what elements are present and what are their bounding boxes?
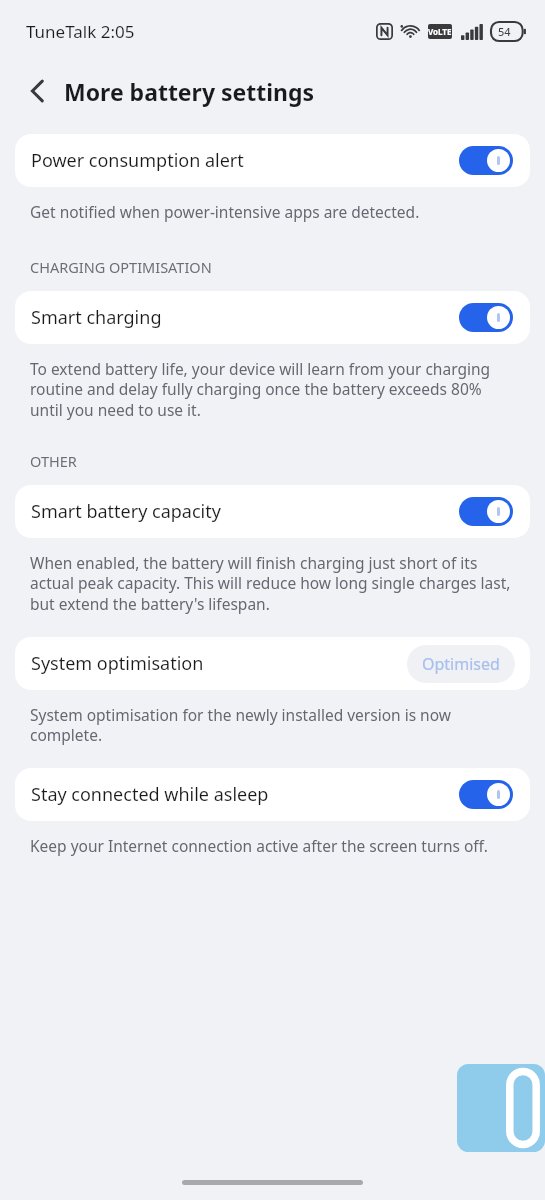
- staticText: Keep your Internet connection active aft…: [30, 835, 515, 856]
- staticText: System optimisation for the newly instal…: [30, 704, 515, 746]
- staticText: To extend battery life, your device will…: [30, 358, 515, 421]
- staticText: More battery settings: [64, 76, 315, 107]
- button[interactable]: Smart battery capacity: [15, 485, 530, 538]
- button[interactable]: Stay connected while asleep: [15, 768, 530, 821]
- staticText: 54: [498, 24, 511, 39]
- staticText: CHARGING OPTIMISATION: [30, 257, 212, 277]
- staticText: Optimised: [422, 653, 500, 675]
- button[interactable]: Power consumption alert: [15, 134, 530, 187]
- staticText: VoLTE: [428, 26, 452, 37]
- button[interactable]: Back: [20, 74, 54, 108]
- staticText: Power consumption alert: [31, 148, 244, 173]
- staticText: OTHER: [30, 451, 77, 471]
- staticText: Smart charging: [31, 305, 162, 330]
- staticText: System optimisation: [31, 651, 204, 676]
- staticText: Stay connected while asleep: [31, 782, 269, 807]
- staticText: Smart battery capacity: [31, 499, 221, 524]
- staticText: When enabled, the battery will finish ch…: [30, 552, 515, 615]
- staticText: TuneTalk 2:05: [26, 20, 135, 43]
- button[interactable]: System optimisation: [15, 637, 530, 690]
- staticText: Get notified when power-intensive apps a…: [30, 201, 515, 222]
- button[interactable]: Smart charging: [15, 291, 530, 344]
